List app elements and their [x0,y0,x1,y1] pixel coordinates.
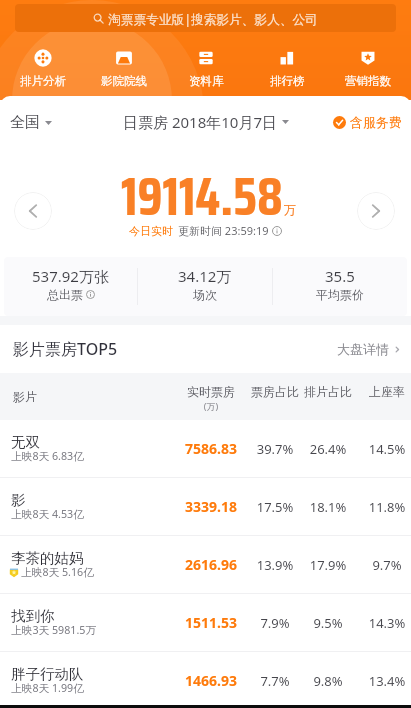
staticText: 大盘详情 [337,341,389,357]
staticText: 日票房 2018年10月7日 [123,112,277,132]
staticText: 2616.96 [176,555,246,574]
staticText: (万) [176,400,246,412]
button[interactable]: 34.12万 [138,257,272,316]
staticText: 3339.18 [176,497,246,516]
staticText: 排片占比 [293,384,363,399]
button[interactable]: 影院院线 [86,49,162,88]
staticText: 含服务费 [350,114,402,130]
staticText: 万 [284,202,296,217]
staticText: 场次 [193,287,217,302]
staticText: 7.7% [240,672,310,690]
staticText: 14.5% [352,440,411,458]
staticText: 1511.53 [176,613,246,632]
staticText: 1466.93 [176,671,246,690]
staticText: 7.9% [240,614,310,632]
staticText: 9.5% [293,614,363,632]
button[interactable]: 35.5 [273,257,407,316]
staticText: 17.9% [293,556,363,574]
button[interactable]: 含服务费 [333,114,402,130]
staticText: 影片票房TOP5 [13,338,118,360]
staticText: 上映8天 5.16亿 [21,565,94,580]
button[interactable]: 无双 [0,420,411,478]
button[interactable]: 大盘详情 [337,341,402,357]
staticText: 上映8天 1.99亿 [11,681,84,696]
staticText: 上映3天 5981.5万 [11,623,97,638]
button[interactable]: 排行榜 [249,49,325,88]
button[interactable]: 影 [0,478,411,536]
staticText: 39.7% [240,440,310,458]
button[interactable]: 找到你 [0,594,411,652]
staticText: 影院院线 [101,74,147,88]
button[interactable]: Previous day [14,192,52,230]
staticText: 34.12万 [178,266,232,286]
staticText: 平均票价 [316,287,364,302]
staticText: 7586.83 [176,439,246,458]
staticText: 上映8天 4.53亿 [11,507,84,522]
staticText: 更新时间 23:59:19 [178,223,269,238]
staticText: 9.8% [293,672,363,690]
staticText: 全国 [10,113,40,132]
staticText: 17.5% [240,498,310,516]
staticText: 13.9% [240,556,310,574]
staticText: 排片分析 [20,74,66,88]
staticText: 淘票票专业版|搜索影片、影人、公司 [108,10,318,27]
staticText: 找到你 [11,607,55,625]
staticText: 影片 [13,389,37,404]
staticText: 35.5 [325,266,355,286]
staticText: 票房占比 [240,384,310,399]
button[interactable]: 日票房 2018年10月7日 [123,112,289,132]
staticText: 排行榜 [270,74,305,88]
staticText: 26.4% [293,440,363,458]
button[interactable]: Next day [357,192,395,230]
button[interactable]: 营销指数 [330,49,406,88]
staticText: 537.92万张 [32,266,109,286]
staticText: 18.1% [293,498,363,516]
staticText: 11.8% [352,498,411,516]
button[interactable]: 李茶的姑妈 [0,536,411,594]
button[interactable]: 537.92万张 [4,257,137,316]
staticText: 胖子行动队 [11,665,84,683]
staticText: 影 [11,491,26,509]
staticText: 总出票 [47,287,83,302]
staticText: 今日实时 [129,224,173,238]
staticText: 资料库 [189,74,224,88]
staticText: 9.7% [352,556,411,574]
staticText: 14.3% [352,614,411,632]
staticText: 13.4% [352,672,411,690]
button[interactable]: 资料库 [168,49,244,88]
button[interactable]: 淘票票专业版|搜索影片、影人、公司 [15,4,396,32]
staticText: 19114.58 [121,155,283,238]
staticText: 实时票房 [176,384,246,399]
staticText: 上映8天 6.83亿 [11,449,84,464]
button[interactable]: 排片分析 [5,49,81,88]
button[interactable]: 全国 [10,113,52,132]
staticText: 李茶的姑妈 [11,549,84,567]
staticText: 上座率 [352,384,411,399]
button[interactable]: 胖子行动队 [0,652,411,708]
staticText: 无双 [11,433,40,451]
staticText: 营销指数 [345,74,391,88]
